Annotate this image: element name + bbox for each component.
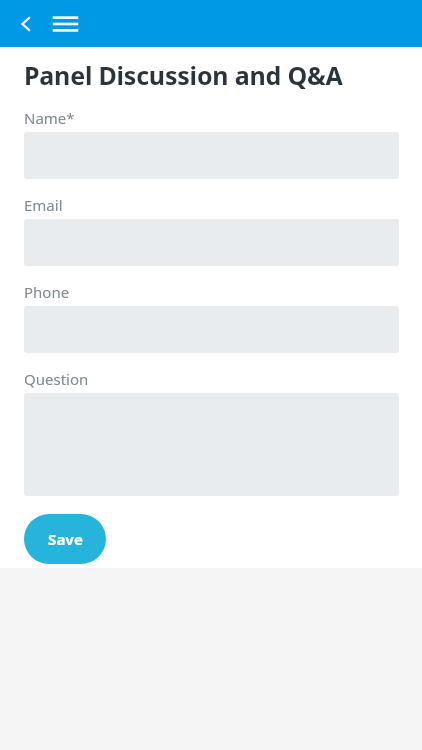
staticText: Question [24, 369, 89, 389]
staticText: Email [24, 195, 63, 215]
staticText: Phone [24, 282, 70, 302]
button[interactable]: Save [24, 514, 106, 564]
staticText: Panel Discussion and Q&A [24, 58, 343, 92]
button[interactable]: Back [10, 8, 42, 40]
button[interactable]: Menu [48, 7, 82, 41]
staticText: Name* [24, 108, 75, 128]
staticText: Save [48, 529, 83, 549]
